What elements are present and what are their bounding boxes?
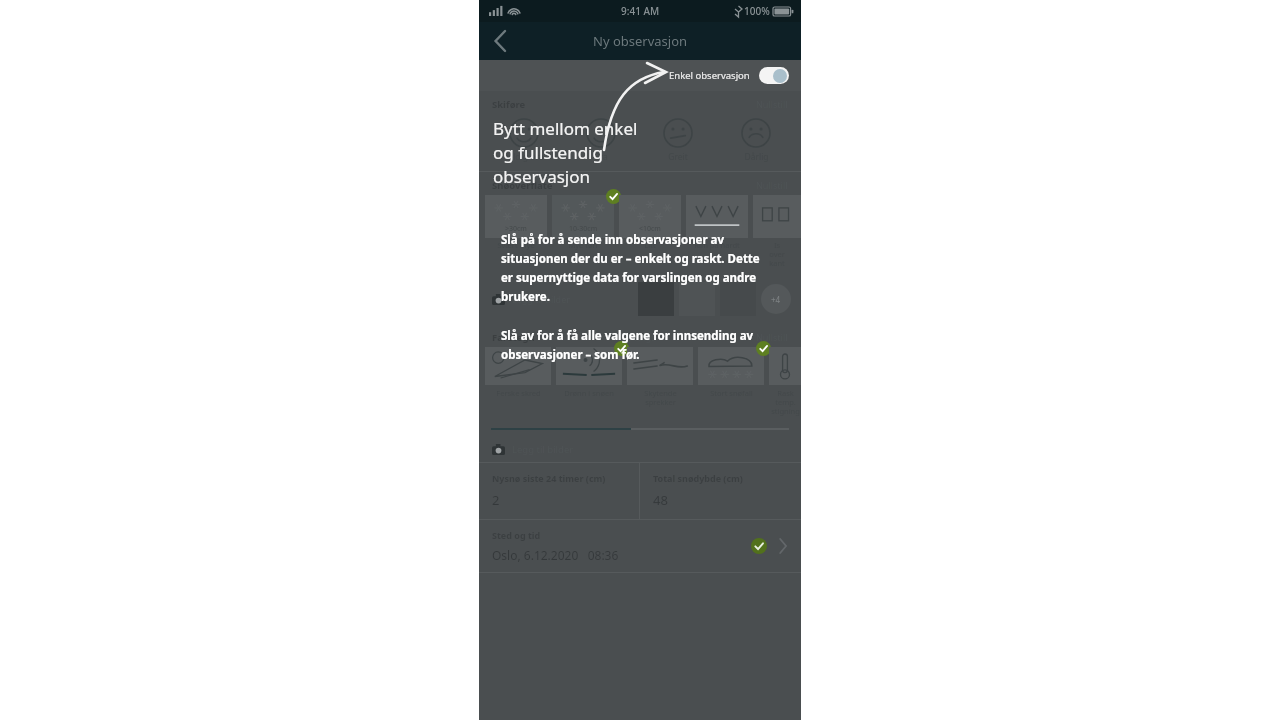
staticText: Nysnø siste 24 timer (cm) xyxy=(492,472,606,484)
staticText: Sted og tid xyxy=(492,529,541,541)
staticText: 100% xyxy=(744,4,770,18)
button[interactable]: Drønn i snøen xyxy=(556,347,622,398)
staticText: og fullstendig xyxy=(493,141,603,164)
staticText: Veldig bra xyxy=(503,151,544,163)
button[interactable]: >30cm xyxy=(485,195,547,250)
button[interactable]: Legg til bilder xyxy=(492,443,574,456)
staticText: Litt xyxy=(644,240,656,250)
button[interactable]: <10cm xyxy=(619,195,681,250)
staticText: 10-30cm xyxy=(569,224,598,234)
staticText: Snøoverflate xyxy=(492,179,553,192)
button[interactable]: Rask temp. stigning xyxy=(769,347,801,416)
button[interactable]: 10-30cm xyxy=(552,195,614,250)
staticText: 48 xyxy=(653,491,668,509)
staticText: <10cm xyxy=(639,224,661,234)
staticText: observasjon xyxy=(493,165,590,188)
staticText: 2 valgt xyxy=(626,331,655,343)
staticText: Bra xyxy=(594,151,608,163)
button[interactable]: Rim på hardt xyxy=(686,195,748,250)
button[interactable]: Enkel observasjon xyxy=(669,67,789,84)
staticText: Enkel observasjon xyxy=(669,69,750,82)
staticText: +4 xyxy=(771,294,781,305)
button[interactable]: Veldig bra xyxy=(485,118,562,163)
staticText: Ny observasjon xyxy=(593,32,688,50)
button[interactable]: Photo xyxy=(679,282,715,316)
staticText: Svært mye xyxy=(497,240,535,250)
staticText: Legg til bilder xyxy=(512,293,570,305)
button[interactable]: Is over kant xyxy=(753,195,801,268)
staticText: Mye tørr xyxy=(568,240,599,250)
staticText: Faretegn xyxy=(492,331,535,344)
staticText: 2 xyxy=(492,491,500,509)
button[interactable]: Bra xyxy=(562,118,639,163)
button[interactable]: Legg til bilder xyxy=(492,293,570,305)
button[interactable]: Sted og tid xyxy=(479,520,801,572)
staticText: Slå på for å sende inn observasjoner av … xyxy=(501,232,769,304)
button[interactable]: Ferske skred xyxy=(485,347,551,398)
staticText: Rim på hardt xyxy=(694,240,740,250)
button[interactable]: Back xyxy=(479,22,521,60)
staticText: 9:41 AM xyxy=(621,4,660,18)
staticText: >30cm xyxy=(505,224,527,234)
button[interactable]: +4 xyxy=(761,284,791,314)
button[interactable]: Stort snøfall xyxy=(698,347,764,398)
staticText: Total snødybde (cm) xyxy=(653,472,743,484)
staticText: Oslo, 6.12.2020 08:36 xyxy=(492,547,619,563)
staticText: Slå av for å få alle valgene for innsend… xyxy=(501,328,763,362)
staticText: Skiføre xyxy=(492,98,526,111)
staticText: Bytt mellom enkel xyxy=(493,117,638,140)
button[interactable]: Nullstill xyxy=(756,331,788,343)
button[interactable]: Skytende sprekker xyxy=(627,347,693,407)
